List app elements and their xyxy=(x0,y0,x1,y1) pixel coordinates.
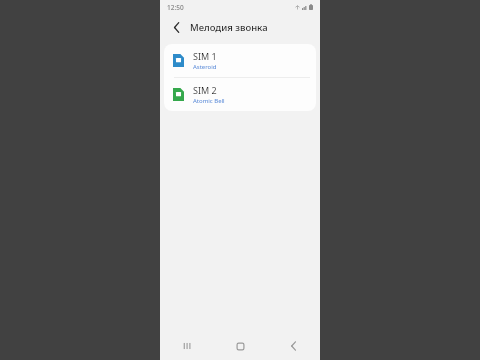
button[interactable]: SIM 1 xyxy=(164,44,316,77)
staticText: Atomic Bell xyxy=(193,97,225,105)
button[interactable]: Back xyxy=(267,332,320,360)
button[interactable]: Back xyxy=(166,17,186,37)
button[interactable]: Recents xyxy=(160,332,214,360)
staticText: SIM 2 xyxy=(193,84,217,96)
staticText: Мелодия звонка xyxy=(190,21,268,34)
staticText: Asteroid xyxy=(193,63,217,71)
button[interactable]: Home xyxy=(214,332,267,360)
staticText: 12:50 xyxy=(167,3,184,12)
staticText: SIM 1 xyxy=(193,50,217,62)
button[interactable]: SIM 2 xyxy=(164,78,316,111)
